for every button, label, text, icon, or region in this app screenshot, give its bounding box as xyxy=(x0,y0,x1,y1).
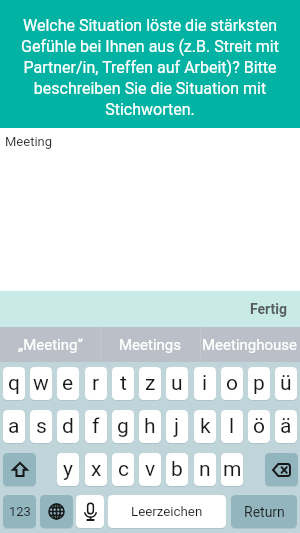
staticText: Welche Situation löste die stärksten Gef… xyxy=(18,16,282,119)
button[interactable]: Leerzeichen xyxy=(108,495,226,528)
staticText: x xyxy=(91,457,102,482)
staticText: m xyxy=(223,457,242,482)
button[interactable]: e xyxy=(57,367,79,400)
staticText: d xyxy=(62,414,74,439)
staticText: l xyxy=(229,414,235,439)
staticText: w xyxy=(33,371,49,396)
staticText: ä xyxy=(280,414,292,439)
staticText: h xyxy=(144,414,156,439)
staticText: Leerzeichen xyxy=(131,504,203,520)
staticText: f xyxy=(92,414,100,439)
button[interactable]: w xyxy=(30,367,52,400)
button[interactable]: „Meeting“ xyxy=(0,327,100,362)
staticText: n xyxy=(199,457,211,482)
button[interactable]: ü xyxy=(275,367,297,400)
staticText: i xyxy=(202,371,208,396)
staticText: 123 xyxy=(9,504,31,519)
staticText: r xyxy=(92,371,100,396)
staticText: v xyxy=(145,457,156,482)
staticText: e xyxy=(62,371,74,396)
button[interactable]: o xyxy=(221,367,243,400)
button[interactable]: d xyxy=(57,410,79,443)
staticText: z xyxy=(145,371,156,396)
button[interactable]: k xyxy=(194,410,216,443)
button[interactable]: f xyxy=(85,410,107,443)
staticText: q xyxy=(8,371,20,396)
staticText: Meeting xyxy=(5,134,53,149)
button[interactable]: c xyxy=(112,453,134,486)
button[interactable]: Fertig xyxy=(236,292,300,326)
staticText: Fertig xyxy=(250,301,287,317)
button[interactable]: z xyxy=(139,367,161,400)
button[interactable]: t xyxy=(112,367,134,400)
staticText: s xyxy=(36,414,47,439)
button[interactable]: x xyxy=(85,453,107,486)
button[interactable]: Next keyboard xyxy=(40,495,73,528)
button[interactable]: b xyxy=(166,453,188,486)
button[interactable]: n xyxy=(194,453,216,486)
staticText: Meetings xyxy=(119,336,182,354)
button[interactable]: y xyxy=(57,453,79,486)
button[interactable]: ö xyxy=(248,410,270,443)
staticText: k xyxy=(200,414,211,439)
staticText: Meetinghouse xyxy=(202,336,298,354)
staticText: Return xyxy=(244,504,285,520)
button[interactable]: ä xyxy=(275,410,297,443)
staticText: y xyxy=(63,457,73,482)
button[interactable]: Meetinghouse xyxy=(200,327,300,362)
staticText: o xyxy=(226,371,238,396)
staticText: u xyxy=(171,371,183,396)
staticText: „Meeting“ xyxy=(18,336,83,354)
button[interactable]: a xyxy=(3,410,25,443)
staticText: ü xyxy=(280,371,292,396)
staticText: b xyxy=(171,457,183,482)
staticText: p xyxy=(253,371,265,396)
button[interactable]: m xyxy=(221,453,243,486)
button[interactable]: g xyxy=(112,410,134,443)
button[interactable]: r xyxy=(85,367,107,400)
button[interactable]: Delete xyxy=(265,453,298,486)
button[interactable]: l xyxy=(221,410,243,443)
staticText: ö xyxy=(253,414,265,439)
button[interactable]: j xyxy=(166,410,188,443)
button[interactable]: Shift xyxy=(3,453,36,486)
staticText: a xyxy=(8,414,20,439)
button[interactable]: Return xyxy=(231,495,297,528)
staticText: t xyxy=(120,371,127,396)
button[interactable]: u xyxy=(166,367,188,400)
button[interactable]: s xyxy=(30,410,52,443)
button[interactable]: q xyxy=(3,367,25,400)
staticText: g xyxy=(117,414,129,439)
button[interactable]: h xyxy=(139,410,161,443)
staticText: c xyxy=(118,457,129,482)
button[interactable]: Meetings xyxy=(100,327,200,362)
button[interactable]: p xyxy=(248,367,270,400)
staticText: j xyxy=(174,414,180,439)
button[interactable]: 123 xyxy=(3,495,36,528)
button[interactable]: i xyxy=(194,367,216,400)
button[interactable]: v xyxy=(139,453,161,486)
button[interactable]: Dictate xyxy=(76,495,104,528)
